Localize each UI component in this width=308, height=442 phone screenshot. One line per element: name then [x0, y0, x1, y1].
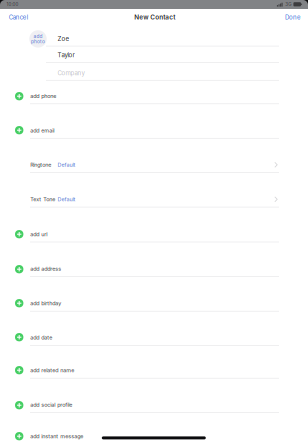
button[interactable] [0, 0, 308, 442]
staticText: add birthday [30, 300, 61, 307]
staticText: Taylor [58, 51, 75, 59]
button[interactable]: Cancel [3, 10, 33, 25]
button[interactable]: Add photo [29, 30, 47, 48]
button[interactable] [0, 0, 308, 442]
staticText: add related name [30, 367, 74, 374]
staticText: add url [30, 231, 47, 237]
staticText: add social profile [30, 401, 72, 408]
button[interactable] [0, 0, 308, 442]
button[interactable] [0, 0, 308, 442]
button[interactable] [0, 0, 308, 442]
staticText: Ringtone [30, 161, 51, 168]
button[interactable] [0, 0, 308, 442]
staticText: add [33, 33, 42, 39]
staticText: 10:00 [6, 2, 18, 7]
staticText: Default [58, 196, 76, 202]
button[interactable] [0, 0, 308, 442]
button[interactable]: Done [280, 10, 306, 25]
button[interactable] [0, 0, 308, 442]
staticText: Cancel [9, 13, 28, 21]
staticText: photo [31, 39, 45, 44]
staticText: New Contact [134, 13, 175, 21]
staticText: Done [285, 13, 301, 21]
staticText: add phone [30, 93, 56, 99]
staticText: add instant message [30, 433, 83, 439]
staticText: Company [58, 69, 85, 77]
staticText: Text Tone [30, 196, 55, 202]
staticText: Default [58, 161, 76, 168]
staticText: Zoe [58, 35, 70, 42]
staticText: add date [30, 334, 52, 341]
button[interactable] [0, 0, 308, 442]
staticText: 3G [285, 2, 291, 7]
staticText: add address [30, 265, 61, 272]
button[interactable] [0, 0, 308, 442]
staticText: add email [30, 127, 54, 134]
button[interactable] [0, 0, 308, 442]
